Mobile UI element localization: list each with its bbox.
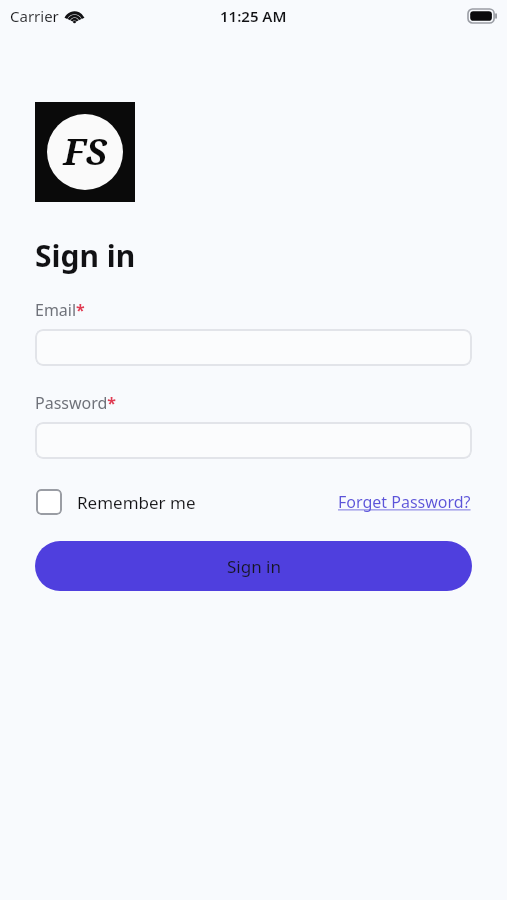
- staticText: Sign in: [35, 235, 136, 276]
- other: FS logo: [35, 102, 135, 202]
- staticText: FS: [63, 127, 107, 176]
- staticText: Remember me: [77, 491, 196, 514]
- button[interactable]: Remember me checkbox: [35, 487, 197, 517]
- button[interactable]: Text input: [35, 422, 472, 459]
- button[interactable]: Forget Password?: [337, 488, 472, 516]
- button[interactable]: Sign in: [35, 541, 472, 591]
- staticText: Email*: [35, 299, 85, 321]
- other: Remember me checkbox: [36, 489, 62, 515]
- staticText: Password*: [35, 392, 117, 414]
- staticText: 11:25 AM: [220, 6, 287, 26]
- staticText: Sign in: [227, 555, 281, 578]
- button[interactable]: Text input: [35, 329, 472, 366]
- staticText: Forget Password?: [338, 491, 471, 513]
- staticText: Carrier: [10, 6, 59, 26]
